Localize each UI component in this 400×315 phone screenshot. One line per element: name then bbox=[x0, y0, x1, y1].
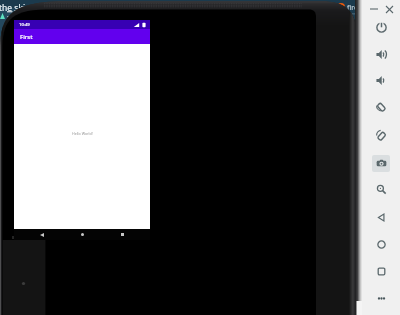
button[interactable]: First bbox=[14, 29, 150, 44]
staticText: First bbox=[20, 33, 33, 41]
button[interactable]: Back bbox=[372, 209, 390, 226]
button[interactable]: Rotate left bbox=[372, 98, 390, 115]
button[interactable]: Recent apps bbox=[110, 229, 134, 240]
button[interactable]: Close bbox=[382, 2, 396, 16]
button[interactable]: Home bbox=[70, 229, 94, 240]
button[interactable]: Volume down bbox=[372, 72, 390, 89]
staticText: 10:49 bbox=[19, 22, 30, 28]
button[interactable]: Back bbox=[30, 229, 54, 240]
staticText: firefox bbox=[347, 3, 369, 13]
button[interactable]: Overview bbox=[372, 263, 390, 280]
button[interactable]: Power bbox=[372, 19, 390, 36]
button[interactable]: Volume up bbox=[372, 46, 390, 63]
button[interactable]: Take screenshot bbox=[372, 155, 390, 172]
button[interactable]: Home bbox=[372, 236, 390, 253]
button[interactable]: Zoom bbox=[372, 181, 390, 198]
staticText: the ski bbox=[0, 2, 26, 14]
button[interactable]: Minimize bbox=[367, 2, 381, 16]
button[interactable]: More options bbox=[372, 290, 390, 307]
staticText: Hello World! bbox=[72, 131, 93, 136]
button[interactable]: Rotate right bbox=[372, 127, 390, 144]
